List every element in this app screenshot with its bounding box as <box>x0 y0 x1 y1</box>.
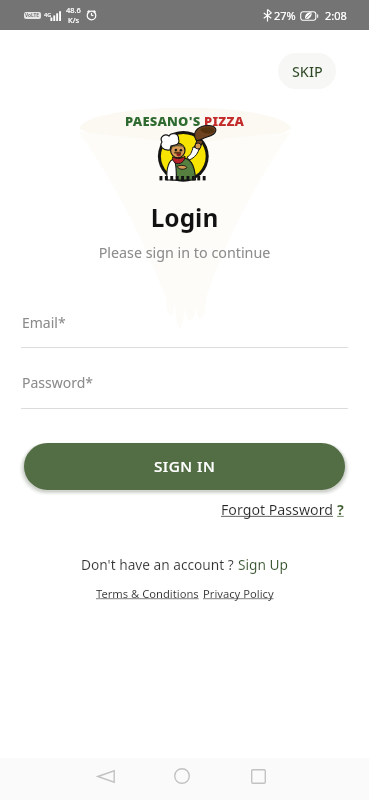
staticText: 48.6 <box>66 5 81 15</box>
staticText: Forgot Password <box>221 500 337 519</box>
staticText: K/s <box>68 15 80 25</box>
button[interactable]: Forgot Password <box>221 500 344 519</box>
staticText: Login <box>0 201 369 234</box>
staticText: Privacy Policy <box>203 586 274 601</box>
staticText: SKIP <box>292 62 323 81</box>
staticText: SIGN IN <box>154 456 216 477</box>
button[interactable]: Terms & Conditions <box>96 586 199 601</box>
staticText: VoLTE <box>25 12 40 19</box>
staticText: PAESANO'S <box>125 112 204 130</box>
staticText: ? <box>337 500 344 519</box>
staticText: 4G <box>44 11 52 18</box>
button[interactable]: Sign Up <box>238 555 288 574</box>
button[interactable]: Back <box>86 756 126 796</box>
staticText: 2:08 <box>325 8 347 23</box>
staticText: Sign Up <box>238 555 288 574</box>
button[interactable]: SIGN IN <box>24 443 345 490</box>
staticText: Email* <box>22 313 66 332</box>
staticText: Don't have an account ? <box>81 555 238 574</box>
staticText: Terms & Conditions <box>96 586 199 601</box>
button[interactable]: Privacy Policy <box>203 586 274 601</box>
staticText: Please sign in to continue <box>0 243 369 262</box>
staticText: 27% <box>274 8 296 23</box>
button[interactable]: SKIP <box>278 53 336 89</box>
button[interactable]: Home <box>162 756 202 796</box>
staticText: PIZZA <box>204 112 245 130</box>
button[interactable]: Recent apps <box>238 756 278 796</box>
staticText: Password* <box>22 373 94 392</box>
